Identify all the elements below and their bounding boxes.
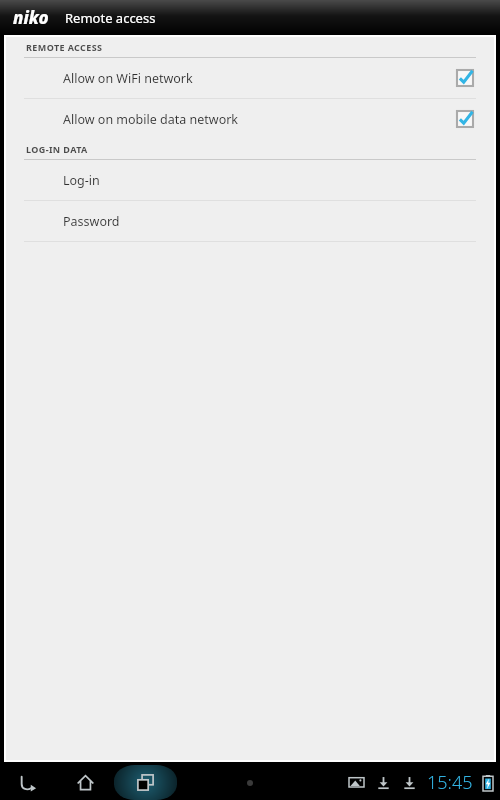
button[interactable]: Toggle setting [454,108,476,130]
button[interactable]: Allow on mobile data network [6,99,494,139]
staticText: 15:45 [427,770,473,795]
staticText: LOG-IN DATA [26,143,88,155]
staticText: Remote access [65,9,156,27]
staticText: Allow on WiFi network [63,70,454,87]
button[interactable]: Allow on WiFi network [6,58,494,98]
button[interactable]: Home [57,765,114,800]
staticText: Allow on mobile data network [63,111,454,128]
button[interactable]: Password [6,201,494,241]
staticText: REMOTE ACCESS [26,41,103,53]
button[interactable]: Log-in [6,160,494,200]
button[interactable]: Toggle setting [454,67,476,89]
button[interactable]: Recent apps [114,765,177,800]
staticText: Log-in [63,172,476,189]
button[interactable]: Back [0,765,57,800]
staticText: niko [13,6,49,29]
staticText: Password [63,213,476,230]
